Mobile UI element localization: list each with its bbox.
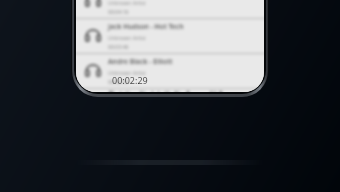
other: Audio recording <box>83 0 103 11</box>
staticText: Unknown Artist <box>108 69 146 76</box>
staticText: 00:02:55 <box>108 78 129 85</box>
staticText: Andre Black - Elliott <box>108 57 173 66</box>
staticText: 00:03:46 <box>108 43 129 50</box>
other: Audio recording <box>83 89 103 92</box>
staticText: Unknown Artist <box>108 34 146 41</box>
staticText: 00:02:29 <box>112 74 148 86</box>
button[interactable]: Audio recording <box>76 53 264 88</box>
button[interactable]: Audio recording <box>76 88 264 92</box>
other: Audio recording <box>83 26 103 46</box>
button[interactable]: Audio recording <box>76 18 264 53</box>
other: Audio recording <box>83 61 103 81</box>
staticText: Jack Hudson - Hot Tech <box>108 22 184 31</box>
staticText: Christian Nodal - Ya No Somos Ni Seremos <box>108 89 248 92</box>
staticText: Unknown Artist <box>108 0 146 6</box>
button[interactable]: Audio recording <box>76 0 264 18</box>
staticText: 00:04:16 <box>108 8 129 15</box>
